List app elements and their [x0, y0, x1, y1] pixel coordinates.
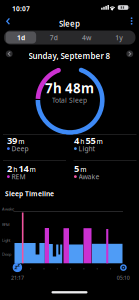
staticText: m [80, 165, 86, 174]
staticText: Sleep Timeline [5, 189, 54, 198]
staticText: 7d [50, 33, 58, 42]
staticText: Awake [2, 206, 14, 212]
staticText: 21:17 [11, 274, 24, 281]
staticText: REM [12, 172, 26, 181]
staticText: 2 [7, 162, 12, 175]
staticText: Sunday, September 8 [28, 51, 110, 61]
staticText: Total Sleep [52, 96, 87, 105]
staticText: Deep [12, 144, 29, 153]
staticText: Awake [79, 172, 100, 181]
staticText: 10:07 [12, 4, 30, 13]
staticText: REM [2, 222, 10, 227]
staticText: 4w [82, 33, 91, 42]
staticText: 5 [74, 162, 79, 175]
staticText: 7h 48m [45, 79, 94, 97]
staticText: h [13, 165, 17, 174]
staticText: 1y [115, 33, 123, 42]
staticText: h [80, 137, 84, 146]
staticText: Sleep [59, 18, 80, 29]
staticText: Light [2, 237, 10, 243]
staticText: 05:10 [117, 274, 130, 281]
staticText: 1d [17, 33, 25, 42]
staticText: m [97, 137, 103, 146]
staticText: m [30, 165, 36, 174]
staticText: 14 [18, 162, 28, 175]
staticText: 55 [85, 134, 95, 147]
staticText: 39 [7, 134, 17, 147]
staticText: m [18, 137, 24, 146]
staticText: 4 [74, 134, 79, 147]
staticText: Deep [2, 251, 11, 257]
staticText: Light [79, 144, 96, 153]
